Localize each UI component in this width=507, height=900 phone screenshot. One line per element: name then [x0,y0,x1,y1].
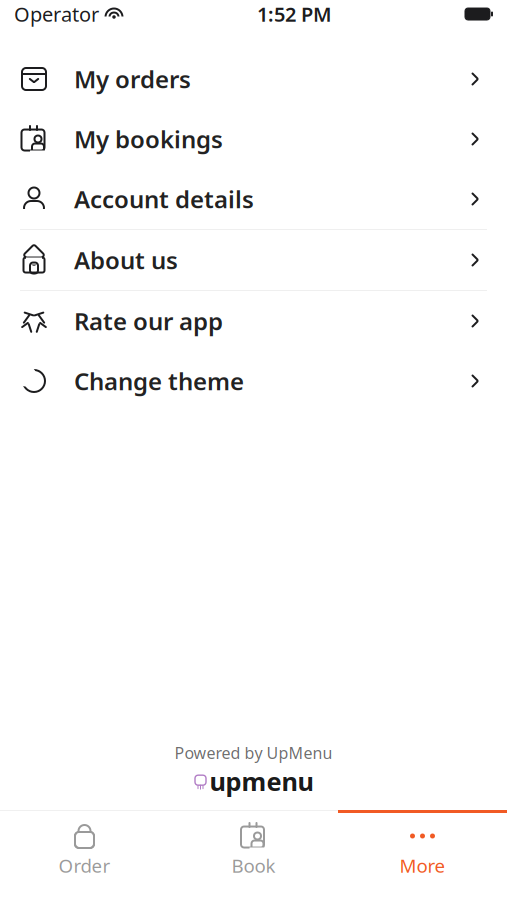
button[interactable]: About us [0,230,507,290]
staticText: Operator [14,1,99,27]
button[interactable]: Change theme [0,351,507,411]
button[interactable]: Account details [0,169,507,229]
button[interactable]: My bookings [0,109,507,169]
staticText: About us [74,244,178,276]
button[interactable]: My orders [0,49,507,109]
staticText: Book [231,853,275,878]
button[interactable]: Book [169,810,338,900]
staticText: My orders [74,63,191,95]
staticText: More [399,853,445,878]
staticText: Account details [74,183,254,215]
staticText: upmenu [209,764,313,798]
staticText: Order [58,853,110,878]
staticText: Powered by UpMenu [174,742,332,763]
button[interactable]: More [338,810,507,900]
staticText: My bookings [74,123,223,155]
button[interactable]: Order [0,810,169,900]
staticText: Change theme [74,365,244,397]
staticText: Rate our app [74,305,223,337]
staticText: 1:52 PM [257,1,332,27]
button[interactable]: Rate our app [0,291,507,351]
